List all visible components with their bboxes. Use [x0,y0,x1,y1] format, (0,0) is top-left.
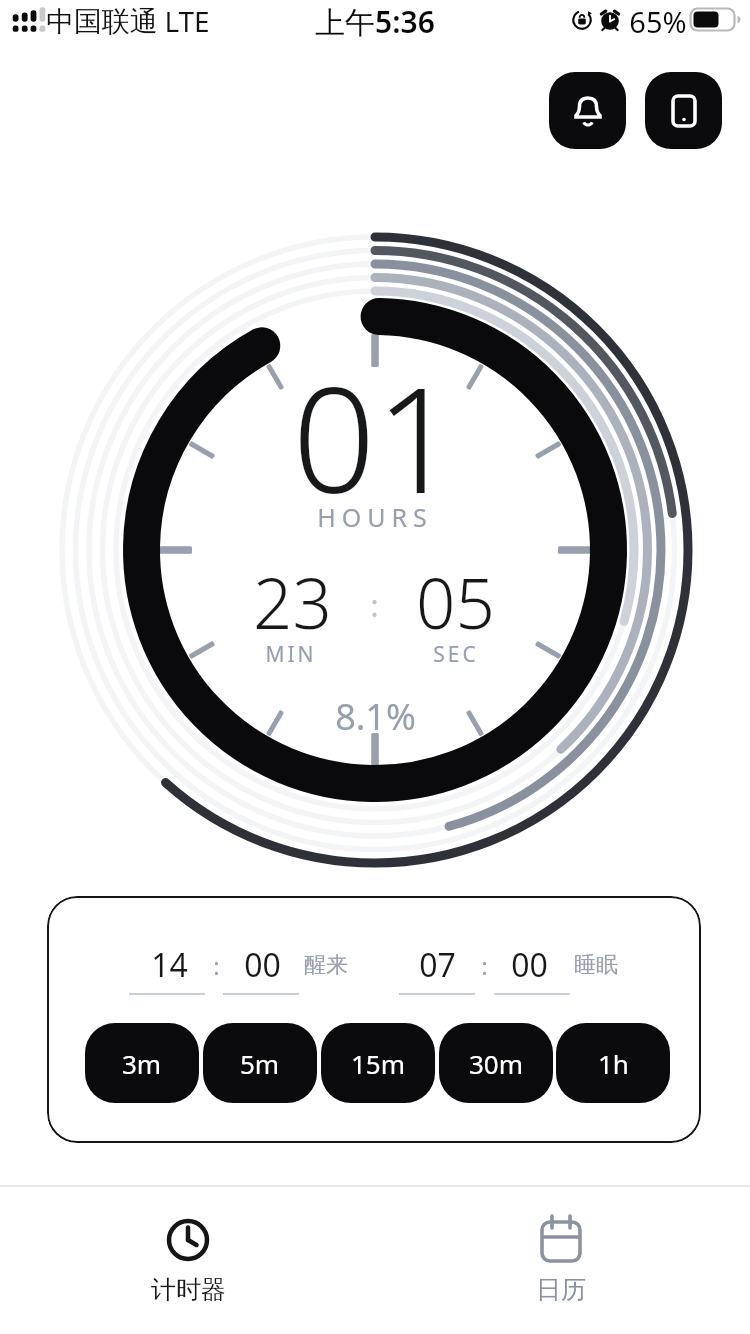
button[interactable]: 15m [321,1023,435,1103]
staticText: SEC [433,640,479,669]
staticText: 23 [253,555,332,649]
staticText: 14 [151,943,188,987]
staticText: 05 [416,555,495,649]
staticText: 醒来 [304,951,348,979]
staticText: 01 [292,337,459,536]
staticText: 65% [629,2,687,41]
staticText: : [481,949,488,982]
staticText: HOURS [317,500,433,534]
button[interactable] [486,1196,636,1316]
staticText: 5m [240,1046,280,1081]
button[interactable] [113,1196,263,1316]
button[interactable] [549,72,626,149]
staticText: MIN [265,640,317,669]
staticText: LTE [164,2,210,40]
button[interactable]: 30m [439,1023,553,1103]
button[interactable]: 5m [203,1023,317,1103]
staticText: 00 [244,943,281,987]
button[interactable] [645,72,722,149]
staticText: 07 [419,943,456,987]
staticText: 8.1% [335,692,416,741]
staticText: 3m [122,1046,162,1081]
staticText: 日历 [536,1274,586,1305]
staticText: 中国联通 [46,4,158,39]
staticText: 1h [598,1046,629,1081]
staticText: : [370,585,379,626]
button[interactable]: 1h [556,1023,670,1103]
staticText: 计时器 [151,1274,226,1305]
staticText: 30m [469,1046,524,1081]
staticText: 15m [351,1046,406,1081]
staticText: 00 [511,943,548,987]
staticText: 上午5:36 [315,1,435,42]
staticText: : [213,949,220,982]
staticText: 睡眠 [574,951,618,979]
button[interactable]: 3m [85,1023,199,1103]
